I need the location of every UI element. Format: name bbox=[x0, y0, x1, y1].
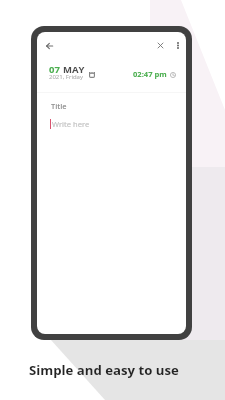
button[interactable]: More options bbox=[171, 38, 185, 52]
button[interactable]: Close bbox=[153, 38, 168, 53]
button[interactable]: Note title field bbox=[37, 98, 186, 138]
staticText: 2021, Friday bbox=[49, 73, 83, 81]
staticText: MAY bbox=[63, 63, 85, 76]
staticText: Write here bbox=[52, 119, 90, 129]
button[interactable]: Select time bbox=[165, 67, 181, 83]
button[interactable]: Select date bbox=[84, 67, 100, 83]
staticText: 02:47 pm bbox=[133, 69, 167, 79]
staticText: 07 bbox=[49, 63, 63, 76]
staticText: Simple and easy to use bbox=[29, 361, 179, 379]
staticText: Title bbox=[51, 101, 67, 111]
button[interactable]: Back bbox=[40, 36, 59, 55]
